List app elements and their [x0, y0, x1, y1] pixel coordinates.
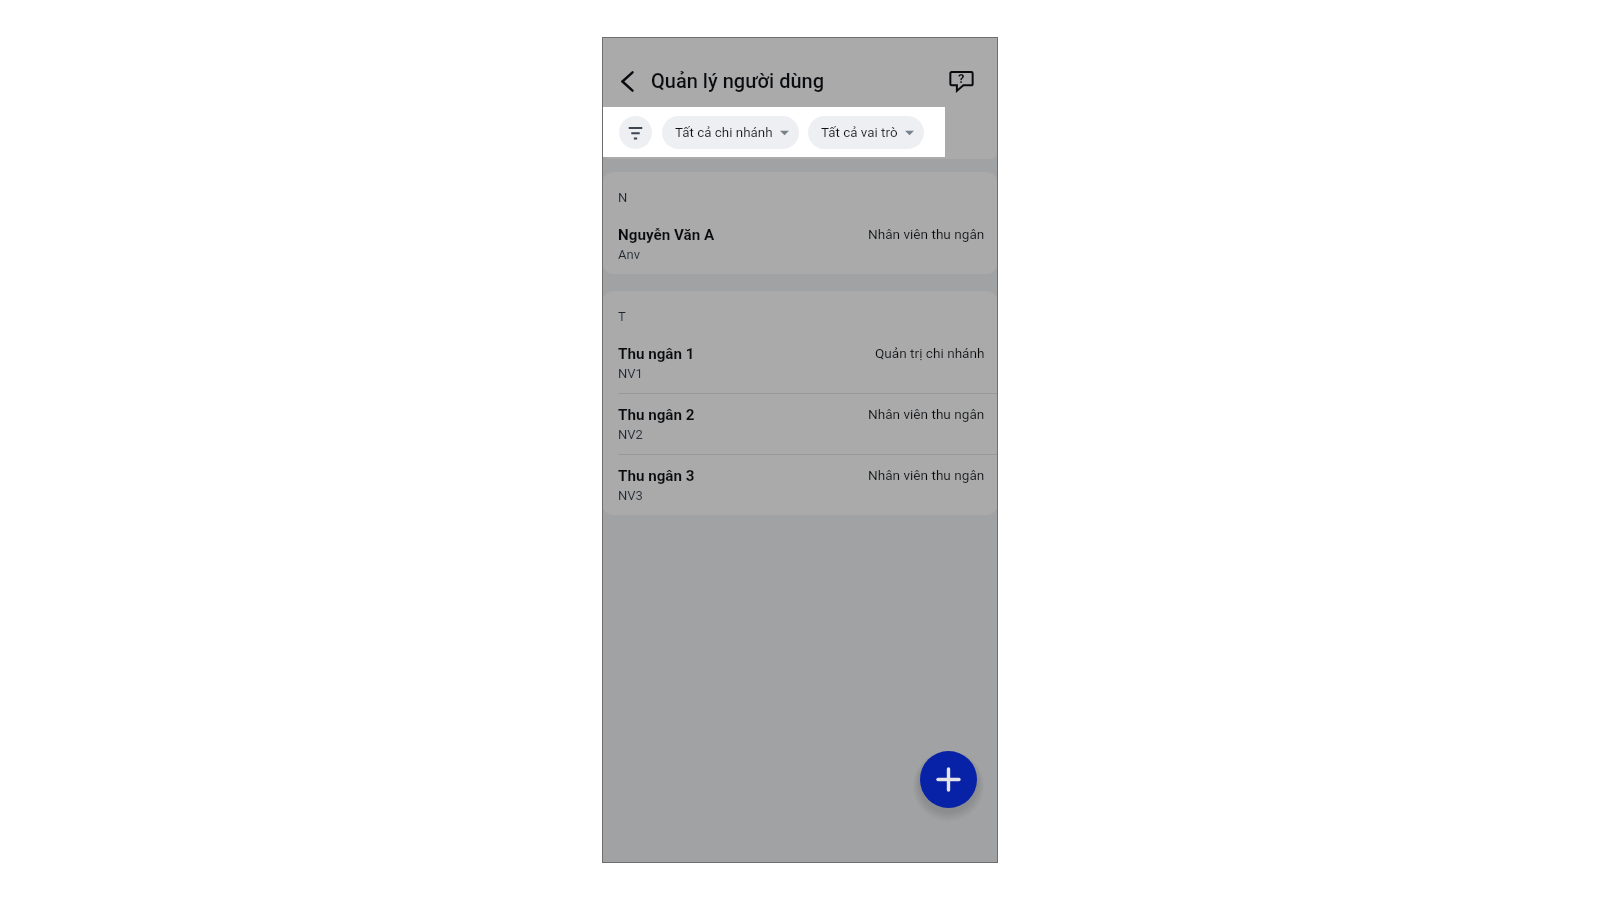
staticText: Thu ngân 3 [618, 467, 695, 485]
staticText: Quản trị chi nhánh [875, 345, 985, 361]
staticText: Thu ngân 2 [618, 406, 695, 424]
button[interactable]: Help [943, 61, 979, 97]
staticText: Nhân viên thu ngân [868, 226, 985, 242]
button[interactable]: Nguyễn Văn A [602, 213, 998, 274]
staticText: Thu ngân 1 [618, 345, 695, 363]
button[interactable]: Thu ngân 3 [602, 454, 998, 515]
button[interactable]: Tất cả vai trò [808, 116, 924, 149]
button[interactable]: Back [609, 63, 645, 99]
staticText: N [618, 190, 628, 205]
button[interactable]: Filter [619, 111, 652, 144]
staticText: NV2 [618, 427, 643, 442]
button[interactable]: Thu ngân 2 [602, 393, 998, 454]
staticText: Tất cả chi nhánh [675, 125, 773, 141]
button[interactable]: Tất cả chi nhánh [662, 111, 799, 144]
staticText: Tất cả vai trò [821, 125, 898, 141]
staticText: Nhân viên thu ngân [868, 467, 985, 483]
staticText: Tất cả chi nhánh [675, 120, 773, 136]
button[interactable]: Tất cả chi nhánh [662, 116, 799, 149]
button[interactable]: Tất cả vai trò [808, 111, 924, 144]
button[interactable]: Filter [619, 116, 652, 149]
staticText: Nhân viên thu ngân [868, 406, 985, 422]
staticText: Tất cả vai trò [821, 120, 898, 136]
staticText: ? [958, 71, 965, 86]
staticText: Nguyễn Văn A [618, 226, 715, 244]
button[interactable]: Thu ngân 1 [602, 332, 998, 393]
button[interactable]: Add user [920, 751, 977, 808]
staticText: NV1 [618, 366, 643, 381]
staticText: T [618, 309, 626, 324]
staticText: Quản lý người dùng [651, 69, 825, 92]
staticText: NV3 [618, 488, 643, 503]
staticText: Anv [618, 247, 640, 262]
